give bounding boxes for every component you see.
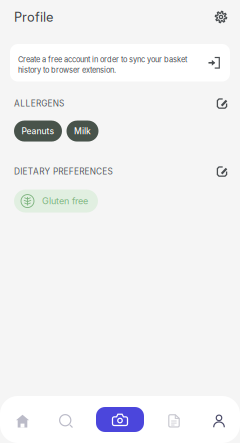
button[interactable]: Gluten free — [14, 190, 98, 213]
button[interactable]: Search — [45, 396, 87, 443]
button[interactable]: Peanuts — [14, 121, 62, 142]
staticText: Gluten free — [42, 196, 88, 207]
staticText: ALLERGENS — [14, 99, 64, 109]
staticText: Profile — [14, 9, 53, 25]
button[interactable]: Scan — [87, 396, 153, 443]
button[interactable]: Lists — [153, 396, 195, 443]
button[interactable]: Profile — [195, 396, 240, 443]
staticText: Peanuts — [21, 126, 54, 136]
staticText: Milk — [74, 126, 91, 136]
button[interactable]: Edit dietary preferences — [213, 163, 231, 181]
button[interactable]: Edit allergens — [213, 95, 231, 113]
staticText: DIETARY PREFERENCES — [14, 167, 112, 177]
staticText: Create a free account in order to sync y… — [18, 55, 187, 75]
button[interactable]: Milk — [66, 121, 98, 142]
button[interactable]: Home — [0, 396, 45, 443]
button[interactable]: Create a free account in order to sync y… — [10, 44, 230, 82]
button[interactable]: Settings — [212, 8, 230, 26]
